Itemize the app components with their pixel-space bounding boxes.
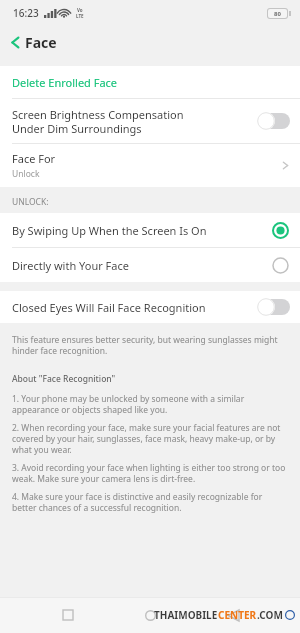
button[interactable]: Face For [0, 144, 300, 187]
button[interactable]: Delete Enrolled Face [0, 66, 300, 98]
button[interactable]: Back [218, 600, 248, 630]
button[interactable]: Home [135, 600, 165, 630]
staticText: 2. When recording your face, make sure y… [12, 422, 286, 455]
staticText: THAIMOBILE [154, 608, 218, 622]
staticText: 3. Avoid recording your face when lighti… [12, 462, 286, 484]
staticText: LTE [76, 13, 84, 19]
staticText: Closed Eyes Will Fail Face Recognition [12, 300, 257, 315]
staticText: By Swiping Up When the Screen Is On [12, 223, 272, 238]
staticText: Face [25, 33, 57, 52]
staticText: Face For [12, 151, 56, 166]
staticText: CENTER [218, 608, 257, 622]
staticText: Directly with Your Face [12, 258, 272, 273]
button[interactable]: Directly with Your Face [0, 248, 300, 282]
button[interactable]: Back [0, 31, 25, 54]
button[interactable]: By Swiping Up When the Screen Is On [0, 213, 300, 247]
staticText: UNLOCK: [12, 196, 49, 208]
staticText: Delete Enrolled Face [12, 75, 118, 90]
staticText: Unlock [12, 168, 40, 180]
button[interactable]: Recents [53, 600, 83, 630]
staticText: .COM [257, 608, 283, 622]
staticText: About "Face Recognition" [12, 373, 116, 385]
staticText: Screen Brightness Compensation Under Dim… [12, 107, 257, 136]
staticText: 1. Your phone may be unlocked by someone… [12, 393, 286, 415]
staticText: 16:23 [13, 6, 39, 20]
staticText: Vo [77, 7, 83, 13]
staticText: 4. Make sure your face is distinctive an… [12, 491, 286, 513]
button[interactable]: Screen Brightness Compensation Under Dim… [0, 99, 300, 143]
staticText: 80 [274, 10, 281, 18]
button[interactable]: Closed Eyes Will Fail Face Recognition [0, 291, 300, 323]
staticText: This feature ensures better security, bu… [12, 334, 286, 356]
